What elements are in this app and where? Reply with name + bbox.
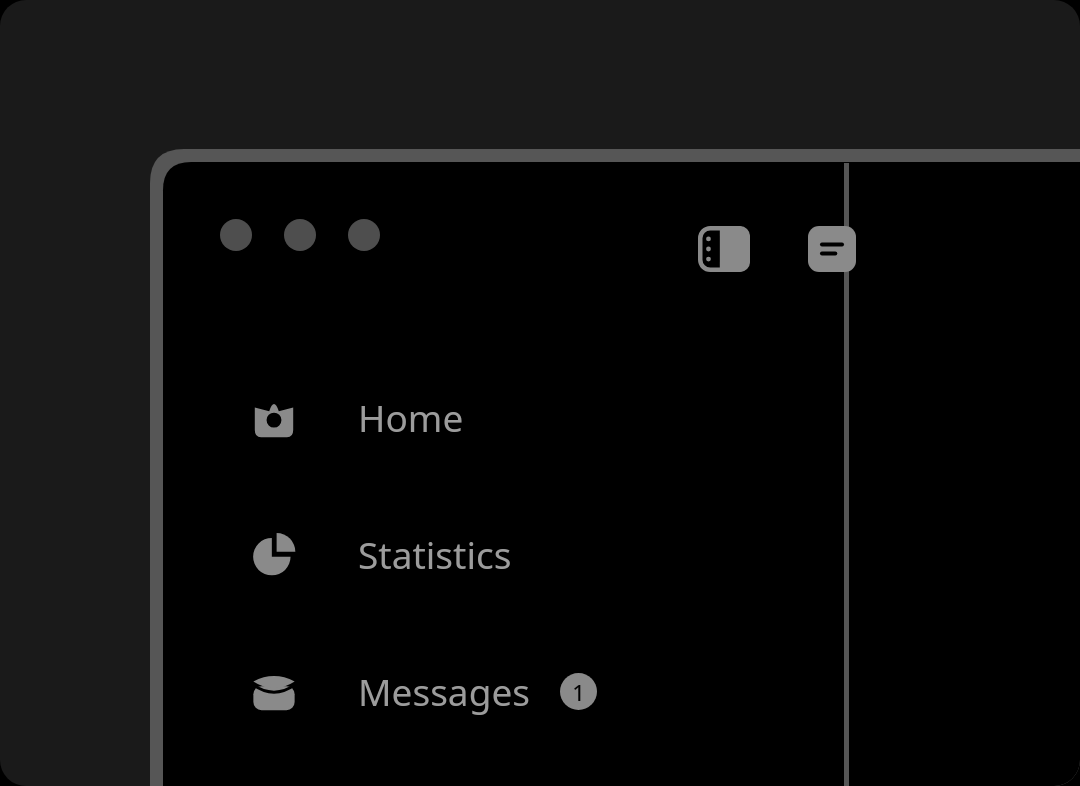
button[interactable]: Window control: [348, 219, 380, 251]
staticText: Statistics: [358, 529, 512, 579]
staticText: Home: [358, 392, 464, 442]
staticText: 1: [572, 677, 585, 707]
button[interactable]: Statistics: [150, 514, 844, 594]
button[interactable]: Messages: [150, 651, 844, 731]
staticText: Messages: [358, 666, 530, 716]
button[interactable]: Window control: [284, 219, 316, 251]
button[interactable]: Window control: [220, 219, 252, 251]
button[interactable]: Toggle sidebar: [698, 223, 750, 275]
button[interactable]: Home: [150, 377, 844, 457]
button[interactable]: List options: [806, 223, 858, 275]
